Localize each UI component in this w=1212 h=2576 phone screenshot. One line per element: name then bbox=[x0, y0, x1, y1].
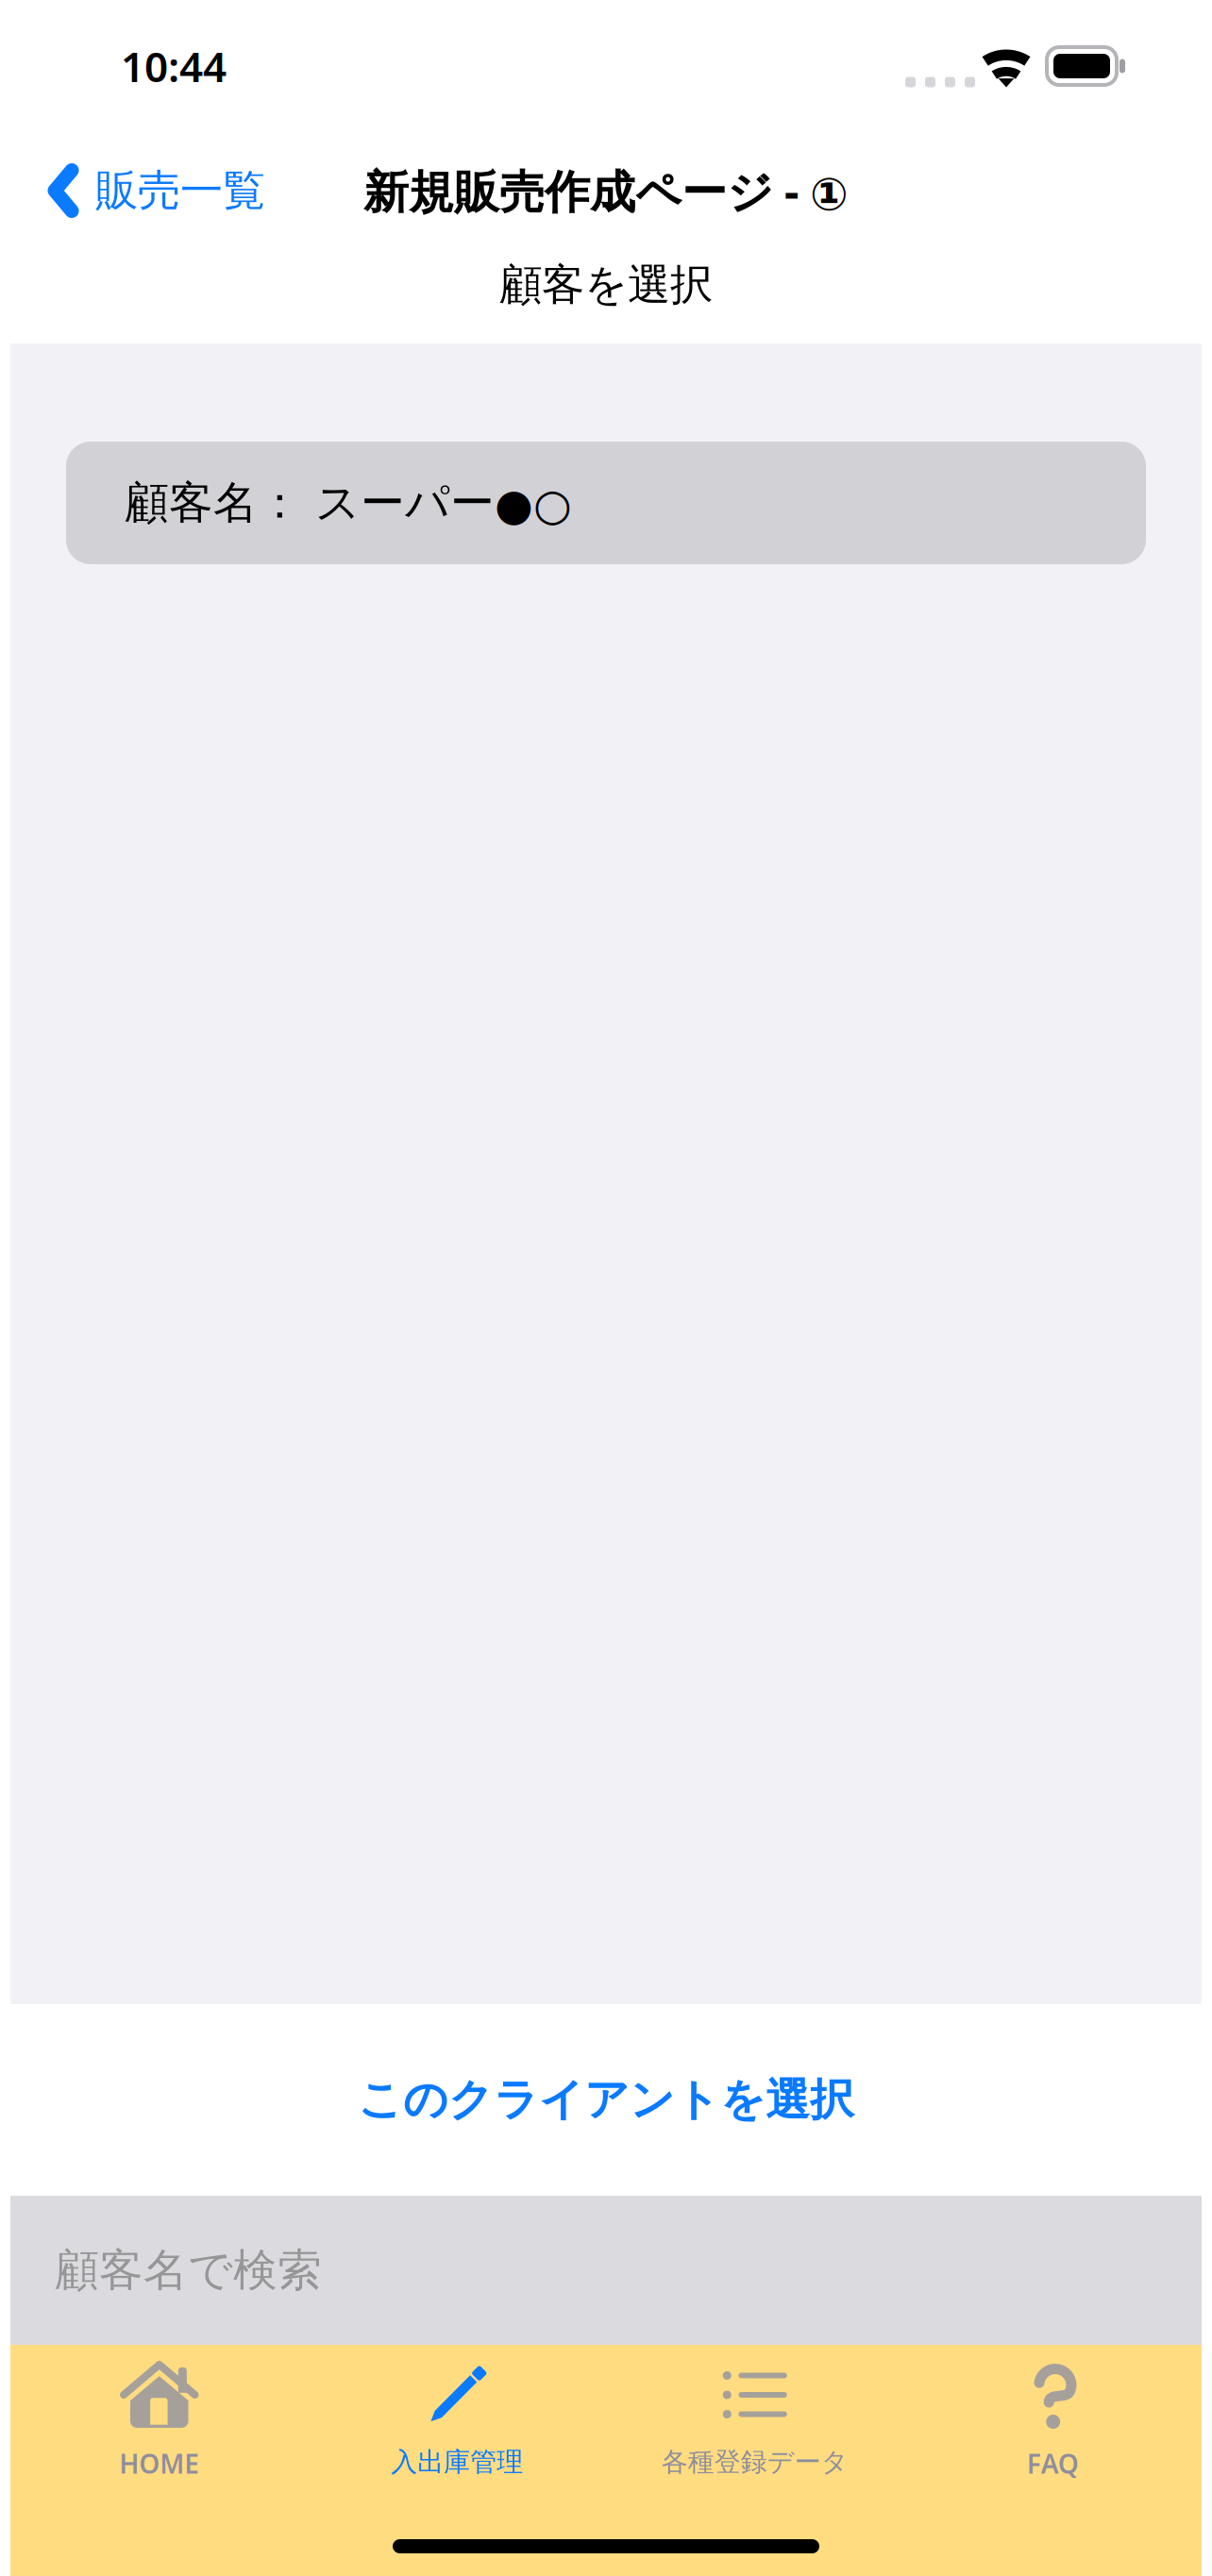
staticText: 販売一覧 bbox=[95, 164, 265, 217]
button[interactable]: 顧客名で検索 bbox=[10, 2196, 1202, 2345]
button[interactable]: 販売一覧 bbox=[0, 125, 265, 257]
staticText: 入出庫管理 bbox=[391, 2446, 523, 2478]
button[interactable]: FAQ bbox=[904, 2345, 1202, 2576]
button[interactable]: 入出庫管理 bbox=[308, 2345, 606, 2576]
staticText: HOME bbox=[119, 2446, 199, 2481]
staticText: 顧客を選択 bbox=[499, 259, 713, 311]
staticText: 新規販売作成ページ - ① bbox=[363, 161, 849, 221]
staticText: 各種登録データ bbox=[662, 2446, 848, 2478]
button[interactable]: 顧客名： スーパー●○ bbox=[66, 442, 1146, 564]
staticText: FAQ bbox=[1027, 2446, 1079, 2481]
staticText: 顧客名で検索 bbox=[55, 2243, 322, 2297]
staticText: このクライアントを選択 bbox=[358, 2073, 854, 2127]
button[interactable]: 各種登録データ bbox=[606, 2345, 904, 2576]
staticText: 顧客名： スーパー●○ bbox=[125, 476, 572, 530]
button[interactable]: このクライアントを選択 bbox=[0, 2004, 1212, 2196]
staticText: 10:44 bbox=[121, 38, 227, 94]
button[interactable]: HOME bbox=[10, 2345, 308, 2576]
